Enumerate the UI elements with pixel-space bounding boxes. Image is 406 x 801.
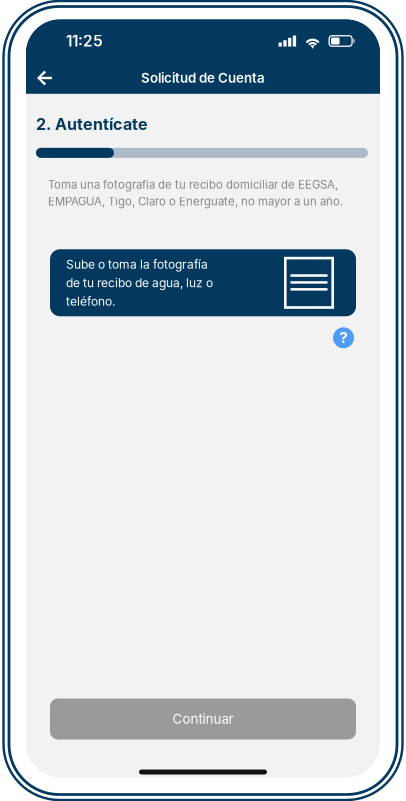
staticText: Toma una fotografía de tu recibo domicil… [48, 178, 338, 192]
button[interactable]: Sube o toma la fotografía [50, 249, 356, 316]
staticText: 2. Autentícate [36, 114, 148, 134]
staticText: Solicitud de Cuenta [141, 70, 265, 86]
button[interactable]: Help [333, 327, 354, 348]
button[interactable]: Back [26, 60, 66, 96]
staticText: Continuar [172, 711, 233, 727]
staticText: Sube o toma la fotografía [66, 257, 208, 271]
staticText: de tu recibo de agua, luz o [66, 275, 213, 290]
staticText: EMPAGUA, Tigo, Claro o Energuate, no may… [48, 195, 343, 208]
staticText: ? [339, 329, 347, 347]
staticText: teléfono. [66, 294, 115, 308]
staticText: 11:25 [66, 32, 103, 50]
button[interactable]: Continuar [50, 698, 356, 739]
